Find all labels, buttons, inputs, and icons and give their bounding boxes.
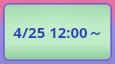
button[interactable]: Date and time 4/25 12:00 onwards [0,0,115,64]
staticText: 4/25 12:00～ [13,22,103,42]
